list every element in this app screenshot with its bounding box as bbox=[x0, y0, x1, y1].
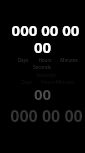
staticText: Hours bbox=[25, 57, 65, 63]
staticText: Seconds bbox=[22, 64, 62, 70]
staticText: 00 bbox=[0, 37, 85, 57]
staticText: Minutes bbox=[49, 57, 85, 63]
staticText: Days bbox=[3, 57, 43, 63]
staticText: 000 00 00 bbox=[4, 105, 85, 127]
staticText: Minutes bbox=[45, 79, 85, 86]
button[interactable]: Seconds bbox=[0, 72, 85, 128]
staticText: 000 00 00 bbox=[3, 20, 85, 40]
staticText: Hours bbox=[28, 79, 68, 86]
button[interactable]: 000 00 00 bbox=[0, 16, 85, 72]
staticText: 00 bbox=[0, 84, 85, 104]
staticText: Seconds bbox=[26, 72, 66, 79]
